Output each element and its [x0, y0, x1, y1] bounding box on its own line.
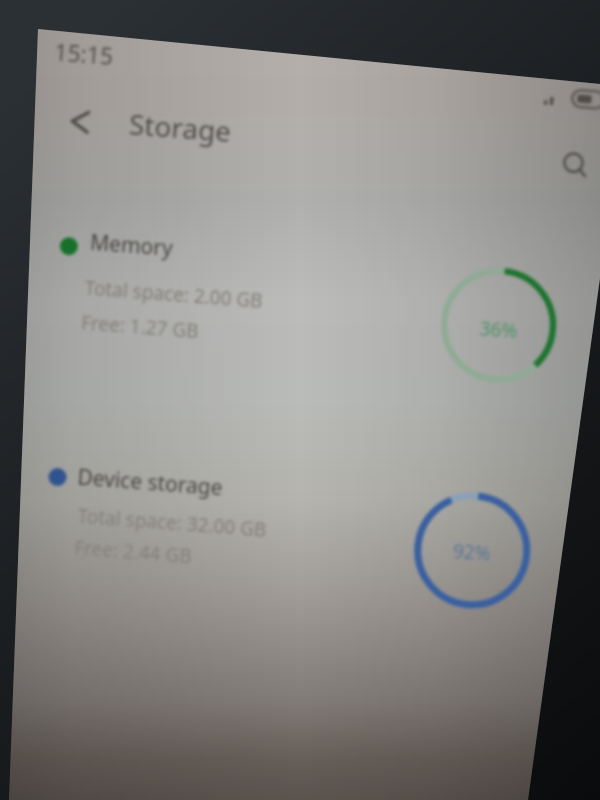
staticText: Free: 2.44 GB	[73, 534, 193, 569]
staticText: Total space: 2.00 GB	[84, 275, 264, 314]
staticText: Total space: 32.00 GB	[77, 503, 268, 543]
staticText: 36%	[479, 315, 519, 344]
staticText: Storage	[128, 104, 233, 150]
button[interactable]: 15:15	[53, 36, 114, 71]
button[interactable]: Back	[53, 96, 105, 147]
staticText: Memory	[89, 228, 174, 263]
staticText: Device storage	[76, 463, 224, 502]
button[interactable]: Search	[550, 140, 600, 192]
staticText: Free: 1.27 GB	[80, 309, 200, 344]
button[interactable]	[45, 457, 352, 584]
button[interactable]	[56, 222, 364, 354]
staticText: 92%	[452, 538, 492, 567]
staticText: 15:15	[53, 36, 114, 71]
